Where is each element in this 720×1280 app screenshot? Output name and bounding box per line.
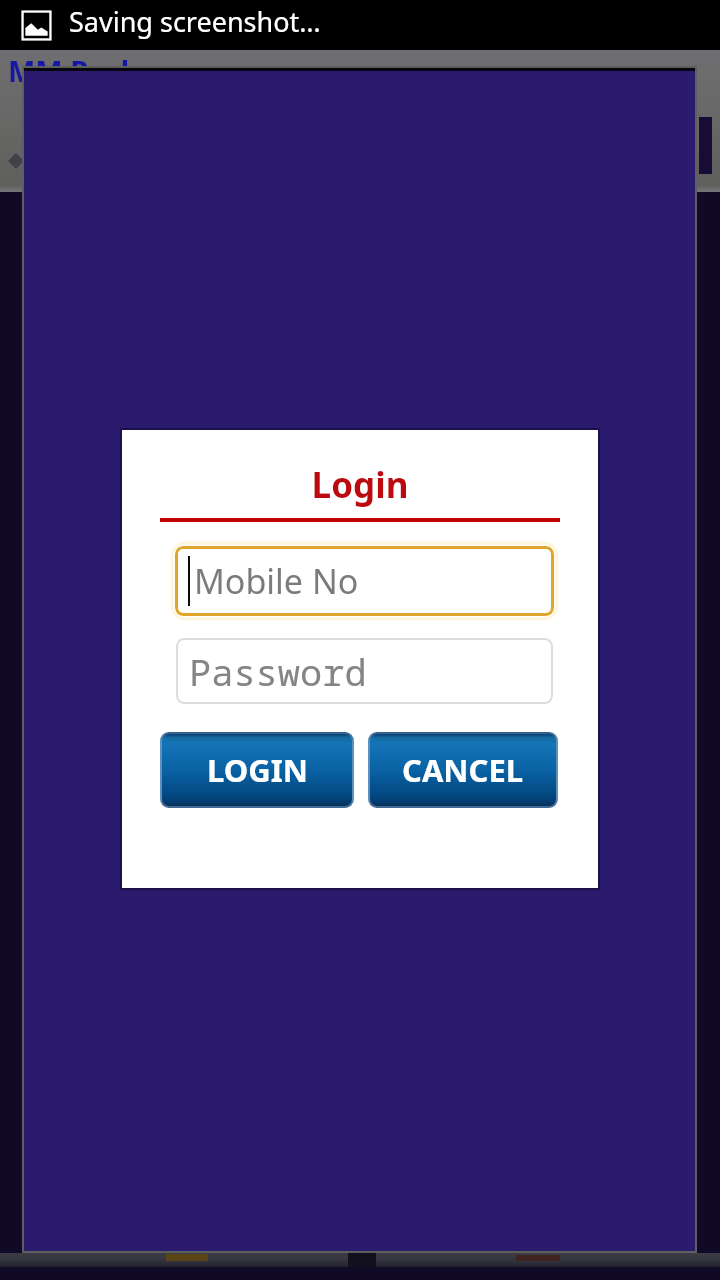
staticText: Mobile No: [194, 558, 359, 604]
staticText: LOGIN: [207, 749, 308, 791]
staticText: Login: [122, 461, 598, 509]
staticText: CANCEL: [402, 749, 524, 791]
button[interactable]: Mobile No: [175, 546, 554, 616]
button[interactable]: LOGIN: [162, 734, 352, 806]
other: Screenshot: [21, 10, 52, 41]
button[interactable]: Password: [176, 638, 553, 704]
button[interactable]: CANCEL: [370, 734, 556, 806]
staticText: MM Package: [8, 51, 192, 90]
staticText: Saving screenshot…: [69, 3, 321, 40]
staticText: Password: [189, 646, 367, 696]
